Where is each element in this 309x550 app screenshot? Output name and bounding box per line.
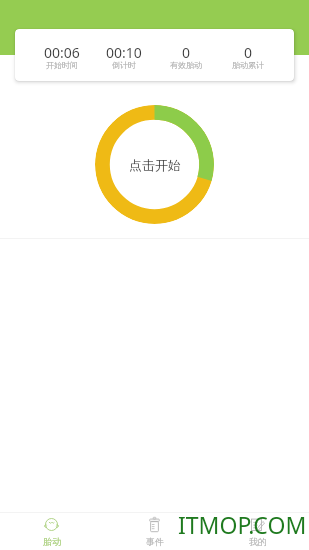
staticText: 开始时间	[46, 60, 78, 70]
staticText: 胎动	[43, 536, 61, 547]
staticText: 00:06	[44, 43, 80, 62]
staticText: 点击开始	[129, 157, 181, 173]
staticText: 0	[182, 43, 191, 62]
button[interactable]: 我的	[206, 513, 309, 550]
button[interactable]: 胎动	[0, 513, 103, 550]
staticText: 我的	[249, 536, 267, 547]
staticText: 倒计时	[112, 60, 136, 70]
other: 胎动	[44, 517, 59, 532]
button[interactable]: 事件	[103, 513, 206, 550]
staticText: 00:10	[106, 43, 142, 62]
staticText: ITMOP.COM	[178, 509, 307, 540]
staticText: 有效胎动	[170, 60, 202, 70]
button[interactable]: 点击开始	[95, 105, 214, 224]
other: 我的	[250, 517, 265, 532]
staticText: 0	[244, 43, 253, 62]
other: 事件	[147, 517, 162, 532]
staticText: 事件	[146, 536, 164, 547]
staticText: 胎动累计	[232, 60, 264, 70]
